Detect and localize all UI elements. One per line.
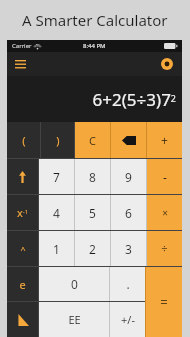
button[interactable]: +/-	[110, 302, 145, 337]
button[interactable]: x-1	[7, 195, 38, 230]
staticText: 6+2(5÷3)72	[92, 88, 176, 111]
staticText: 6	[125, 205, 132, 221]
button[interactable]: 0	[39, 267, 109, 301]
button[interactable]: 6	[111, 195, 146, 230]
staticText: =	[160, 293, 168, 311]
staticText: EE	[68, 312, 81, 327]
button[interactable]: ÷	[147, 231, 182, 266]
button[interactable]: -	[147, 159, 182, 194]
button[interactable]: Menu	[10, 54, 30, 74]
staticText: A Smarter Calculator	[22, 10, 168, 30]
button[interactable]: e	[7, 267, 38, 301]
staticText: )	[56, 133, 60, 148]
button[interactable]: 7	[39, 159, 74, 194]
button[interactable]: 4	[39, 195, 74, 230]
button[interactable]: Up	[7, 159, 38, 194]
staticText: 1	[53, 241, 60, 257]
button[interactable]: )	[41, 122, 74, 158]
button[interactable]: 9	[111, 159, 146, 194]
staticText: ÷	[161, 241, 168, 256]
button[interactable]: 3	[111, 231, 146, 266]
button[interactable]: EE	[39, 302, 109, 337]
staticText: 2	[89, 241, 96, 257]
button[interactable]: Backspace	[111, 122, 146, 158]
button[interactable]: =	[146, 267, 182, 337]
staticText: ×	[162, 206, 168, 220]
button[interactable]: 8	[75, 159, 110, 194]
staticText: x-1	[17, 205, 29, 220]
button[interactable]: +	[147, 122, 182, 158]
button[interactable]: C	[75, 122, 110, 158]
staticText: +	[161, 132, 168, 148]
button[interactable]: 5	[75, 195, 110, 230]
staticText: .	[126, 276, 130, 292]
staticText: Carrier	[12, 42, 32, 50]
staticText: 7	[53, 169, 60, 185]
staticText: 4	[53, 205, 60, 221]
button[interactable]: Angle	[7, 302, 38, 337]
staticText: -	[163, 169, 167, 185]
staticText: 5	[89, 205, 96, 221]
staticText: (	[22, 133, 26, 148]
button[interactable]: 2	[75, 231, 110, 266]
button[interactable]: Record	[157, 54, 177, 74]
staticText: 8:44 PM	[83, 42, 106, 50]
staticText: ^	[20, 243, 26, 255]
button[interactable]: (	[7, 122, 40, 158]
button[interactable]: .	[110, 267, 145, 301]
staticText: 8	[89, 169, 96, 185]
staticText: 0	[71, 276, 78, 292]
staticText: 3	[125, 241, 132, 257]
staticText: 9	[125, 169, 132, 185]
staticText: e	[19, 277, 26, 292]
staticText: C	[89, 133, 96, 148]
button[interactable]: 1	[39, 231, 74, 266]
button[interactable]: ×	[147, 195, 182, 230]
button[interactable]: ^	[7, 231, 38, 266]
staticText: +/-	[121, 312, 135, 327]
